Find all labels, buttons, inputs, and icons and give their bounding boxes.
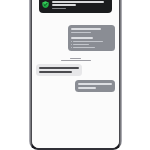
- button[interactable]: Safety verified: [39, 0, 112, 13]
- button[interactable]: [68, 25, 115, 51]
- other: Safety verified: [42, 1, 49, 8]
- button[interactable]: [75, 80, 115, 92]
- button[interactable]: [36, 64, 82, 76]
